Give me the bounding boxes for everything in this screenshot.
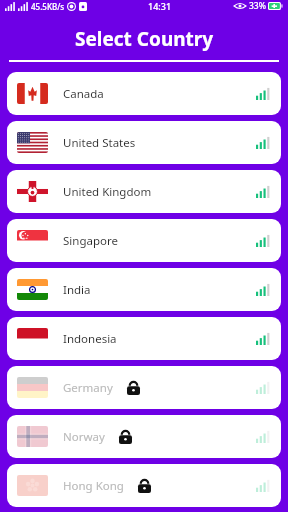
staticText: Indonesia — [63, 331, 117, 347]
button[interactable]: India — [7, 268, 281, 311]
staticText: 33% — [249, 0, 266, 12]
staticText: United States — [63, 135, 136, 151]
other: Locked — [138, 478, 151, 493]
staticText: United Kingdom — [63, 184, 152, 200]
staticText: Norway — [63, 429, 105, 445]
button[interactable]: Canada — [7, 72, 281, 115]
staticText: Germany — [63, 380, 113, 396]
button[interactable]: United Kingdom — [7, 170, 281, 213]
button[interactable]: Indonesia — [7, 317, 281, 360]
other: Locked — [127, 380, 140, 395]
staticText: Hong Kong — [63, 478, 124, 494]
button[interactable]: Singapore — [7, 219, 281, 262]
staticText: 45.5KB/s — [31, 1, 65, 12]
other: Locked — [119, 429, 132, 444]
button[interactable]: Norway — [7, 415, 281, 458]
staticText: India — [63, 282, 91, 298]
staticText: Select Country — [75, 26, 214, 52]
staticText: Canada — [63, 86, 104, 102]
button[interactable]: Hong Kong — [7, 464, 281, 507]
button[interactable]: United States — [7, 121, 281, 164]
button[interactable]: Germany — [7, 366, 281, 409]
staticText: Singapore — [63, 233, 118, 249]
staticText: 14:31 — [148, 0, 172, 12]
